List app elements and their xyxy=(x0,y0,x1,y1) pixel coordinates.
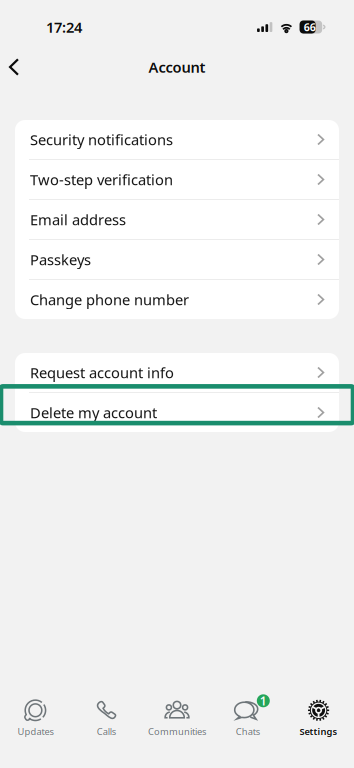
button[interactable]: 1 xyxy=(212,696,283,740)
staticText: Change phone number xyxy=(30,290,189,309)
button[interactable]: Change phone number xyxy=(15,280,339,319)
staticText: Security notifications xyxy=(30,130,173,149)
staticText: Account xyxy=(148,57,205,77)
staticText: Request account info xyxy=(30,363,174,382)
staticText: Two-step verification xyxy=(30,170,173,189)
button[interactable]: Two-step verification xyxy=(15,160,339,199)
button[interactable]: Calls xyxy=(71,696,142,740)
staticText: Email address xyxy=(30,210,126,229)
button[interactable]: Email address xyxy=(15,200,339,239)
button[interactable]: Request account info xyxy=(15,353,339,392)
button[interactable]: Delete my account xyxy=(15,393,339,432)
button[interactable]: Passkeys xyxy=(15,240,339,279)
button[interactable]: Security notifications xyxy=(15,120,339,159)
button[interactable]: Settings xyxy=(283,696,354,740)
staticText: 66 xyxy=(304,20,316,34)
staticText: Passkeys xyxy=(30,250,91,269)
staticText: Chats xyxy=(236,725,260,738)
staticText: Settings xyxy=(300,725,338,738)
staticText: 17:24 xyxy=(46,17,82,37)
button[interactable]: Back xyxy=(0,51,30,83)
staticText: Communities xyxy=(148,725,206,738)
staticText: 1 xyxy=(260,693,267,709)
staticText: Calls xyxy=(97,725,116,738)
staticText: Updates xyxy=(17,725,53,738)
staticText: Delete my account xyxy=(30,403,157,422)
button[interactable]: Communities xyxy=(142,696,212,740)
button[interactable]: Updates xyxy=(0,696,71,740)
